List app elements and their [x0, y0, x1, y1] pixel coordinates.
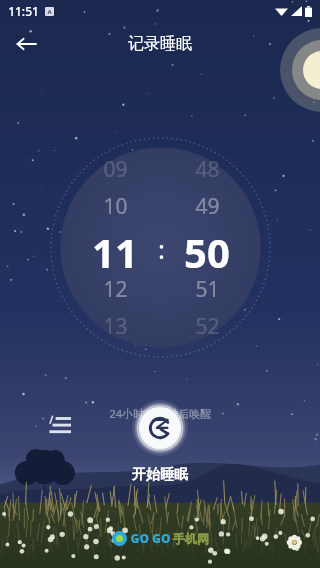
staticText: 10: [103, 192, 128, 221]
staticText: 12: [103, 275, 128, 304]
button[interactable]: Sleep records: [40, 405, 80, 445]
staticText: 记录睡眠: [128, 34, 192, 54]
staticText: 48: [195, 155, 220, 184]
staticText: A: [47, 8, 52, 16]
staticText: 50: [184, 225, 230, 271]
staticText: 13: [103, 312, 128, 341]
button[interactable]: Back: [8, 26, 44, 62]
staticText: 49: [195, 192, 220, 221]
staticText: 51: [195, 275, 220, 304]
staticText: GO GO: [130, 530, 171, 546]
staticText: 09: [103, 155, 128, 184]
button[interactable]: [132, 400, 188, 456]
button[interactable]: 开始睡眠: [132, 466, 188, 484]
staticText: 24小时30分钟后唤醒: [109, 406, 212, 421]
staticText: 开始睡眠: [132, 466, 188, 484]
button[interactable]: 48: [176, 151, 238, 345]
staticText: 11:51: [8, 3, 39, 19]
staticText: 52: [195, 312, 220, 341]
staticText: :: [158, 231, 165, 266]
staticText: 手机网: [173, 531, 209, 546]
staticText: 11: [92, 225, 138, 271]
button[interactable]: 09: [84, 151, 146, 345]
